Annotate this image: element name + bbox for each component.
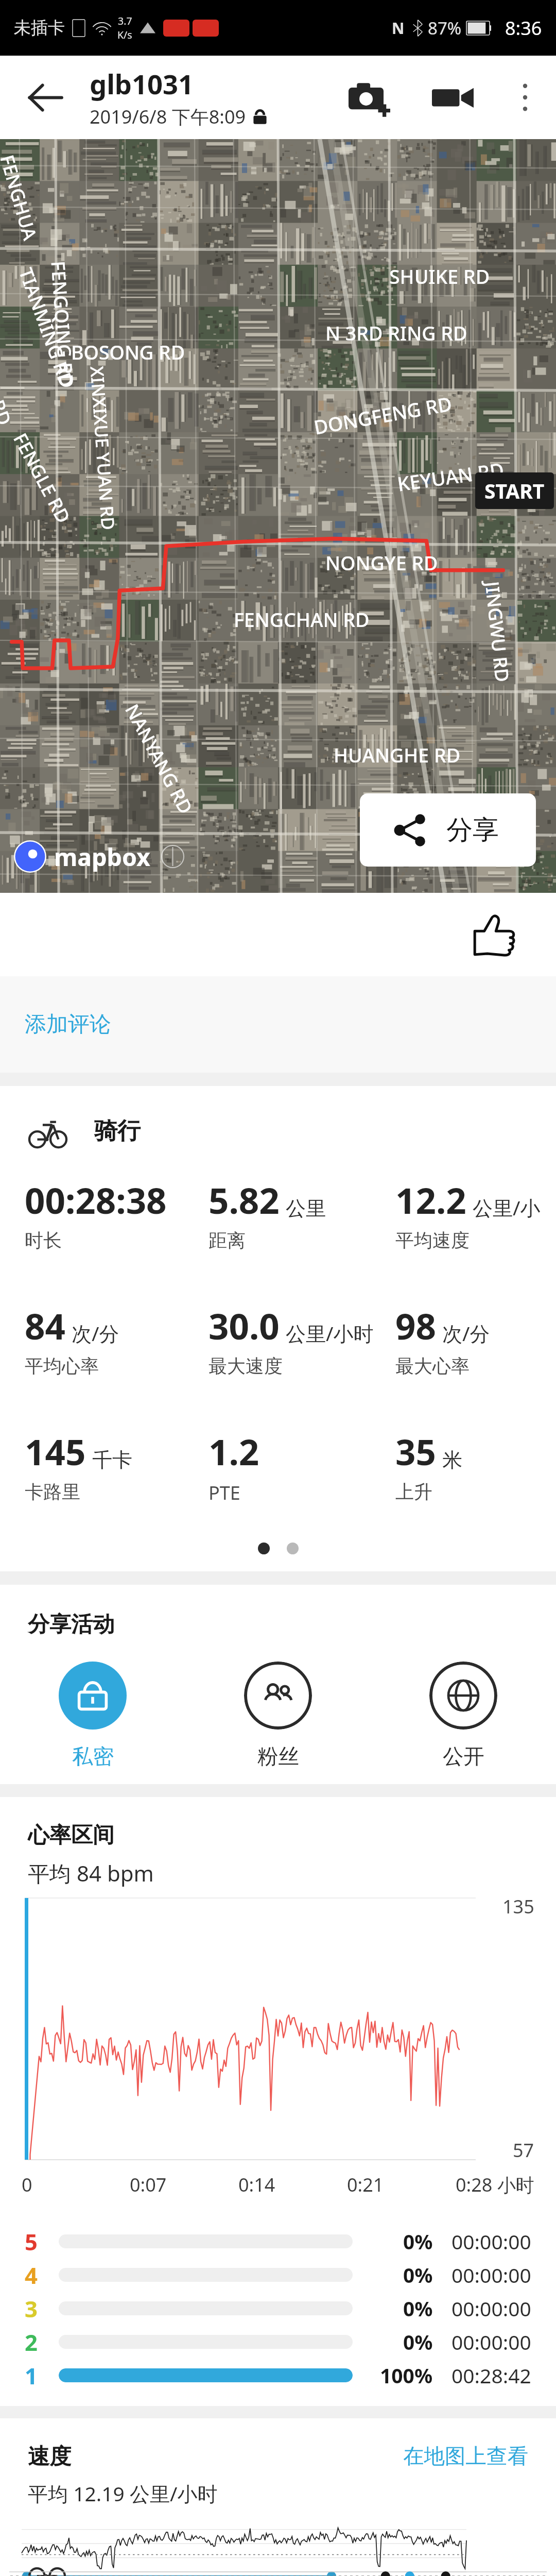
staticText: 时长 [25,1229,62,1252]
staticText: JINGWU RD [480,580,515,684]
staticText: 0:21 [347,2172,456,2197]
staticText: glb1031 [90,65,194,103]
staticText: 平均 12.19 公里/小时 [28,2480,218,2507]
staticText: 2 [25,2327,59,2357]
staticText: 次/分 [442,1319,490,1347]
staticText: 0% [403,2328,433,2355]
staticText: FENGCHAN RD [234,606,370,633]
staticText: 5.82 [208,1176,280,1224]
staticText: 12.2 [395,1176,466,1224]
staticText: 上升 [395,1480,432,1503]
button[interactable]: Back [0,56,90,139]
staticText: 00:00:00 [451,2328,531,2355]
staticText: 千卡 [92,1447,132,1472]
staticText: FENGLE RD [8,429,76,527]
staticText: 公开 [443,1743,484,1770]
staticText: N [392,18,405,39]
staticText: 145 [25,1427,86,1476]
staticText: 3.7 [118,14,132,28]
staticText: TIANMING RD [13,264,80,391]
staticText: 平均心率 [25,1354,99,1378]
staticText: 私密 [72,1743,114,1770]
staticText: HUANGHE RD [334,742,461,768]
staticText: RD [0,396,18,429]
staticText: 0% [403,2261,433,2289]
staticText: BOSONG RD [71,339,185,365]
button[interactable]: 公开 [371,1662,556,1770]
staticText: PTE [208,1480,240,1505]
staticText: 3 [25,2293,59,2324]
staticText: 00:00:00 [451,2228,531,2255]
staticText: 30.0 [208,1301,280,1350]
staticText: 粉丝 [257,1743,299,1770]
staticText: 5 [25,2226,59,2257]
staticText: KEYUAN RD [396,456,506,497]
button[interactable]: 私密 [0,1662,185,1770]
staticText: 2019/6/8 下午8:09 [90,104,246,129]
staticText: 分享 [446,814,499,846]
staticText: 心率区间 [28,1822,114,1849]
staticText: 最大心率 [395,1354,470,1378]
staticText: 分享活动 [28,1611,114,1638]
staticText: 35 [395,1427,436,1476]
staticText: FENGQING RD [46,260,80,389]
staticText: 公里 [286,1196,326,1221]
staticText: 米 [442,1447,462,1472]
staticText: 0% [403,2228,433,2255]
staticText: 87% [428,16,462,40]
staticText: 00:00:00 [451,2261,531,2289]
staticText: 0:14 [238,2172,347,2197]
staticText: 135 [502,1894,534,1919]
button[interactable]: More options [494,56,556,139]
staticText: SHUIKE RD [389,263,490,290]
staticText: 1.2 [208,1427,259,1476]
button[interactable]: 在地图上查看 [403,2443,528,2469]
staticText: 骑行 [94,1116,141,1146]
button[interactable]: Add photo [327,56,411,139]
staticText: 1 [25,2360,59,2391]
staticText: 平均速度 [395,1229,470,1252]
staticText: 速度 [28,2443,71,2470]
staticText: 84 [25,1301,65,1350]
staticText: 00:28:38 [25,1176,167,1224]
staticText: K/s [117,28,132,42]
staticText: 0:07 [130,2172,238,2197]
staticText: N 3RD RING RD [325,320,467,346]
staticText: NANYANG RD [120,700,199,818]
staticText: XINXIXUE YUAN RD [85,365,121,531]
staticText: 98 [395,1301,436,1350]
button[interactable]: Record video [411,56,494,139]
staticText: 平均 84 bpm [28,1858,154,1888]
staticText: 最大速度 [208,1354,283,1378]
staticText: DONGFENG RD [312,390,454,440]
staticText: 00:28:42 [451,2362,531,2389]
staticText: 距离 [208,1229,246,1252]
button[interactable]: Like [460,901,528,969]
staticText: 00:00:00 [451,2295,531,2322]
staticText: 添加评论 [25,1011,111,1038]
staticText: mapbox [54,840,150,873]
button[interactable]: 粉丝 [185,1662,371,1770]
staticText: 8:36 [505,15,542,41]
staticText: 公里/小时 [473,1194,556,1221]
staticText: 0:28 小时 [456,2172,534,2197]
staticText: 4 [25,2260,59,2290]
staticText: 100% [380,2362,433,2389]
staticText: 次/分 [72,1319,119,1347]
staticText: NONGYE RD [325,550,438,576]
staticText: 57 [513,2138,534,2163]
staticText: 0% [403,2295,433,2322]
button[interactable]: 添加评论 [0,976,556,1073]
button[interactable]: 分享 [360,793,536,867]
staticText: START [484,477,545,504]
staticText: 公里/小时 [286,1319,374,1347]
staticText: 0 [22,2172,130,2197]
staticText: FENGHUA [0,152,43,243]
staticText: 卡路里 [25,1480,80,1503]
staticText: 未插卡 [14,17,65,39]
